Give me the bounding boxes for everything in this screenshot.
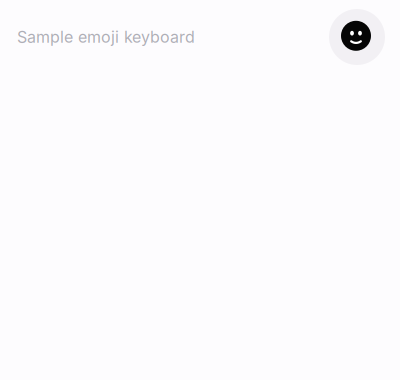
staticText: Sample emoji keyboard (17, 27, 195, 47)
button[interactable]: Emoji keyboard (329, 9, 385, 65)
